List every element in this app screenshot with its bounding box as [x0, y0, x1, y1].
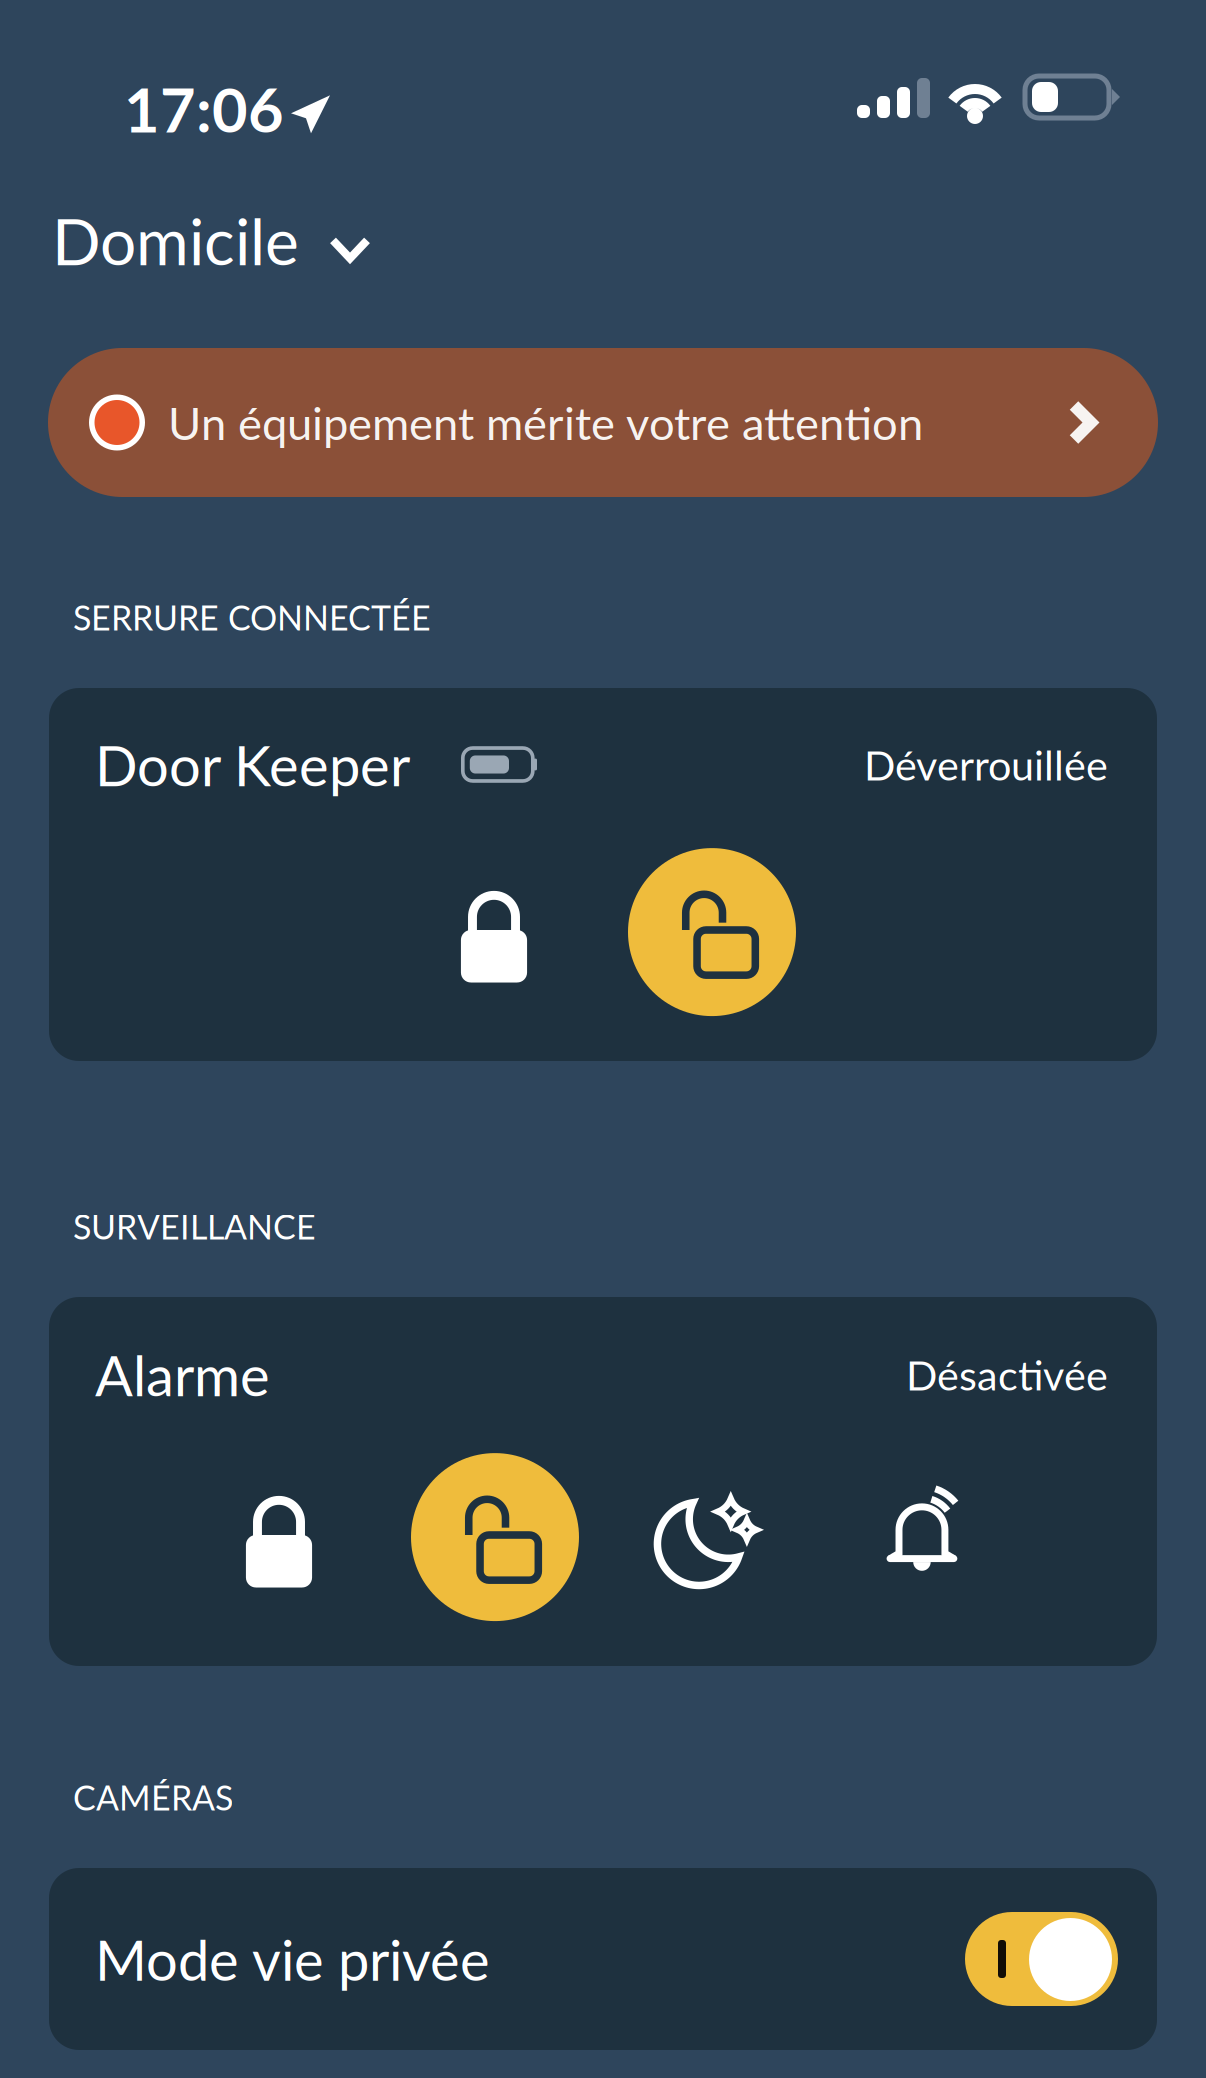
staticText: Alarme: [95, 1341, 270, 1408]
button[interactable]: Déverrouiller: [628, 848, 796, 1016]
staticText: Un équipement mérite votre attention: [168, 395, 923, 450]
staticText: SURVEILLANCE: [73, 1206, 316, 1247]
button[interactable]: Verrouiller: [410, 848, 578, 1016]
button[interactable]: Un équipement mérite votre attention: [48, 348, 1158, 497]
button[interactable]: Désarmer l'alarme: [411, 1453, 579, 1621]
staticText: 17:06: [124, 72, 284, 146]
staticText: Désactivée: [906, 1350, 1108, 1399]
staticText: Door Keeper: [95, 731, 410, 798]
button[interactable]: Armer l'alarme: [195, 1453, 363, 1621]
staticText: SERRURE CONNECTÉE: [73, 597, 431, 638]
staticText: Mode vie privée: [95, 1925, 490, 1993]
button[interactable]: Alerte: [843, 1453, 1011, 1621]
button[interactable]: Domicile: [52, 196, 371, 285]
button[interactable]: Mode nuit: [627, 1453, 795, 1621]
staticText: CAMÉRAS: [73, 1777, 233, 1818]
staticText: Déverrouillée: [864, 740, 1108, 789]
staticText: Domicile: [52, 202, 299, 279]
button[interactable]: Mode vie privée: [49, 1868, 1157, 2050]
